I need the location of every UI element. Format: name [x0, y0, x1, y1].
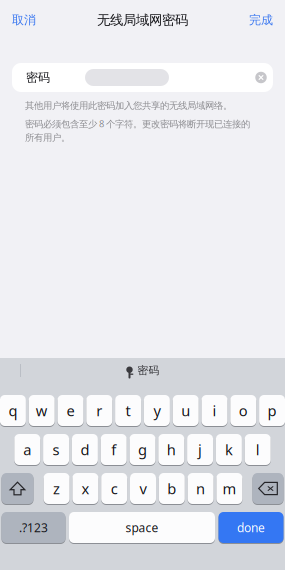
button[interactable]: o: [230, 394, 256, 427]
button[interactable]: i: [201, 394, 227, 427]
button[interactable]: u: [173, 394, 199, 427]
button[interactable]: e: [57, 394, 83, 427]
staticText: space: [125, 519, 158, 535]
staticText: done: [237, 519, 265, 535]
staticText: j: [198, 440, 202, 459]
button[interactable]: l: [245, 433, 271, 466]
staticText: o: [239, 401, 248, 420]
button[interactable]: w: [29, 394, 55, 427]
button[interactable]: j: [187, 433, 213, 466]
staticText: e: [66, 401, 74, 420]
button[interactable]: c: [101, 472, 127, 505]
button[interactable]: r: [86, 394, 112, 427]
button[interactable]: space: [69, 511, 215, 544]
staticText: y: [153, 401, 160, 420]
staticText: f: [111, 440, 116, 459]
button[interactable]: p: [259, 394, 285, 427]
staticText: 完成: [249, 13, 273, 27]
button[interactable]: done: [218, 511, 283, 544]
button[interactable]: 密码: [125, 358, 159, 382]
staticText: q: [8, 401, 17, 420]
staticText: i: [212, 401, 216, 420]
button[interactable]: Shift: [1, 472, 33, 505]
staticText: v: [139, 479, 146, 498]
button[interactable]: b: [159, 472, 185, 505]
button[interactable]: q: [0, 394, 26, 427]
staticText: x: [81, 479, 89, 498]
button[interactable]: z: [44, 472, 70, 505]
staticText: g: [138, 440, 147, 459]
staticText: b: [167, 479, 176, 498]
staticText: h: [167, 440, 176, 459]
button[interactable]: k: [216, 433, 242, 466]
button[interactable]: y: [144, 394, 170, 427]
button[interactable]: h: [158, 433, 184, 466]
button[interactable]: m: [216, 472, 242, 505]
button[interactable]: f: [101, 433, 127, 466]
staticText: c: [111, 479, 118, 498]
button[interactable]: Delete: [252, 472, 283, 505]
button[interactable]: d: [72, 433, 98, 466]
staticText: 密码必须包含至少 8 个字符。更改密码将断开现已连接的: [25, 117, 250, 130]
staticText: l: [256, 440, 260, 459]
staticText: w: [36, 401, 48, 420]
staticText: 密码: [137, 364, 159, 377]
staticText: n: [196, 479, 205, 498]
button[interactable]: a: [14, 433, 40, 466]
button[interactable]: s: [43, 433, 69, 466]
staticText: t: [126, 401, 131, 420]
button[interactable]: x: [72, 472, 98, 505]
staticText: s: [53, 440, 60, 459]
staticText: 取消: [12, 13, 36, 27]
staticText: 无线局域网密码: [97, 12, 188, 28]
staticText: 密码: [26, 70, 50, 85]
staticText: 所有用户。: [25, 132, 70, 143]
staticText: d: [80, 440, 89, 459]
staticText: k: [225, 440, 233, 459]
button[interactable]: v: [130, 472, 156, 505]
button[interactable]: .?123: [1, 511, 65, 544]
button[interactable]: t: [115, 394, 141, 427]
staticText: u: [181, 401, 190, 420]
staticText: p: [268, 401, 277, 420]
staticText: r: [96, 401, 102, 420]
button[interactable]: 完成: [237, 0, 285, 40]
staticText: a: [23, 440, 31, 459]
button[interactable]: Clear text: [249, 63, 273, 92]
button[interactable]: n: [188, 472, 214, 505]
button[interactable]: g: [129, 433, 155, 466]
button[interactable]: 取消: [0, 0, 48, 40]
staticText: .?123: [19, 519, 48, 535]
staticText: z: [53, 479, 60, 498]
staticText: 其他用户将使用此密码加入您共享的无线局域网络。: [25, 100, 232, 111]
staticText: m: [222, 479, 236, 498]
